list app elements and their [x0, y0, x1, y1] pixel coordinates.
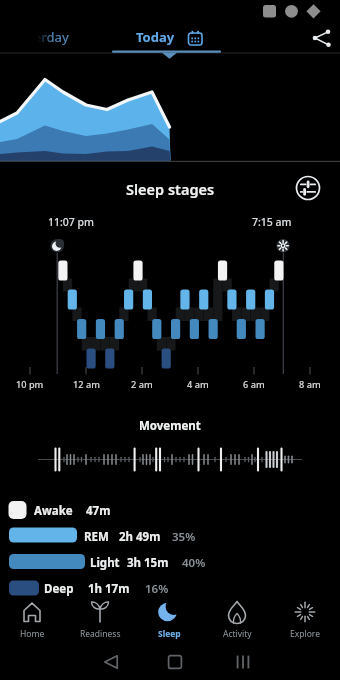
staticText: Awake	[34, 503, 73, 519]
staticText: Activity	[223, 628, 252, 640]
staticText: Movement	[139, 418, 201, 434]
staticText: 10 pm	[16, 378, 44, 391]
button[interactable]	[0, 598, 68, 645]
staticText: Sleep	[158, 628, 181, 640]
staticText: Today	[136, 28, 175, 46]
staticText: 4 am	[187, 378, 209, 391]
staticText: 2 am	[131, 378, 153, 391]
staticText: 2h 49m	[119, 529, 161, 545]
staticText: 11:07 pm	[48, 215, 95, 229]
staticText: 35%	[172, 529, 196, 545]
staticText: 47m	[86, 503, 111, 519]
staticText: Deep	[44, 581, 74, 597]
staticText: Yesterday	[8, 28, 69, 46]
staticText: 3h 15m	[127, 555, 169, 571]
button[interactable]	[205, 647, 275, 678]
staticText: Light	[90, 555, 120, 571]
staticText: 1h 17m	[88, 581, 130, 597]
button[interactable]	[272, 598, 340, 645]
staticText: Readiness	[80, 628, 121, 640]
button[interactable]	[292, 172, 326, 206]
button[interactable]	[300, 20, 340, 56]
staticText: 12 am	[73, 378, 100, 391]
staticText: REM	[84, 529, 109, 545]
button[interactable]	[68, 598, 136, 645]
button[interactable]	[77, 647, 145, 678]
staticText: Home	[20, 628, 45, 640]
staticText: 6 am	[243, 378, 265, 391]
button[interactable]	[0, 22, 110, 54]
staticText: 7:15 am	[252, 215, 292, 229]
staticText: 40%	[182, 555, 206, 571]
staticText: 8 am	[299, 378, 321, 391]
staticText: 16%	[145, 581, 169, 597]
button[interactable]	[110, 22, 240, 54]
staticText: Explore	[290, 628, 320, 640]
button[interactable]	[145, 647, 205, 678]
staticText: Sleep stages	[126, 179, 215, 199]
button[interactable]	[204, 598, 272, 645]
button[interactable]	[136, 598, 204, 645]
